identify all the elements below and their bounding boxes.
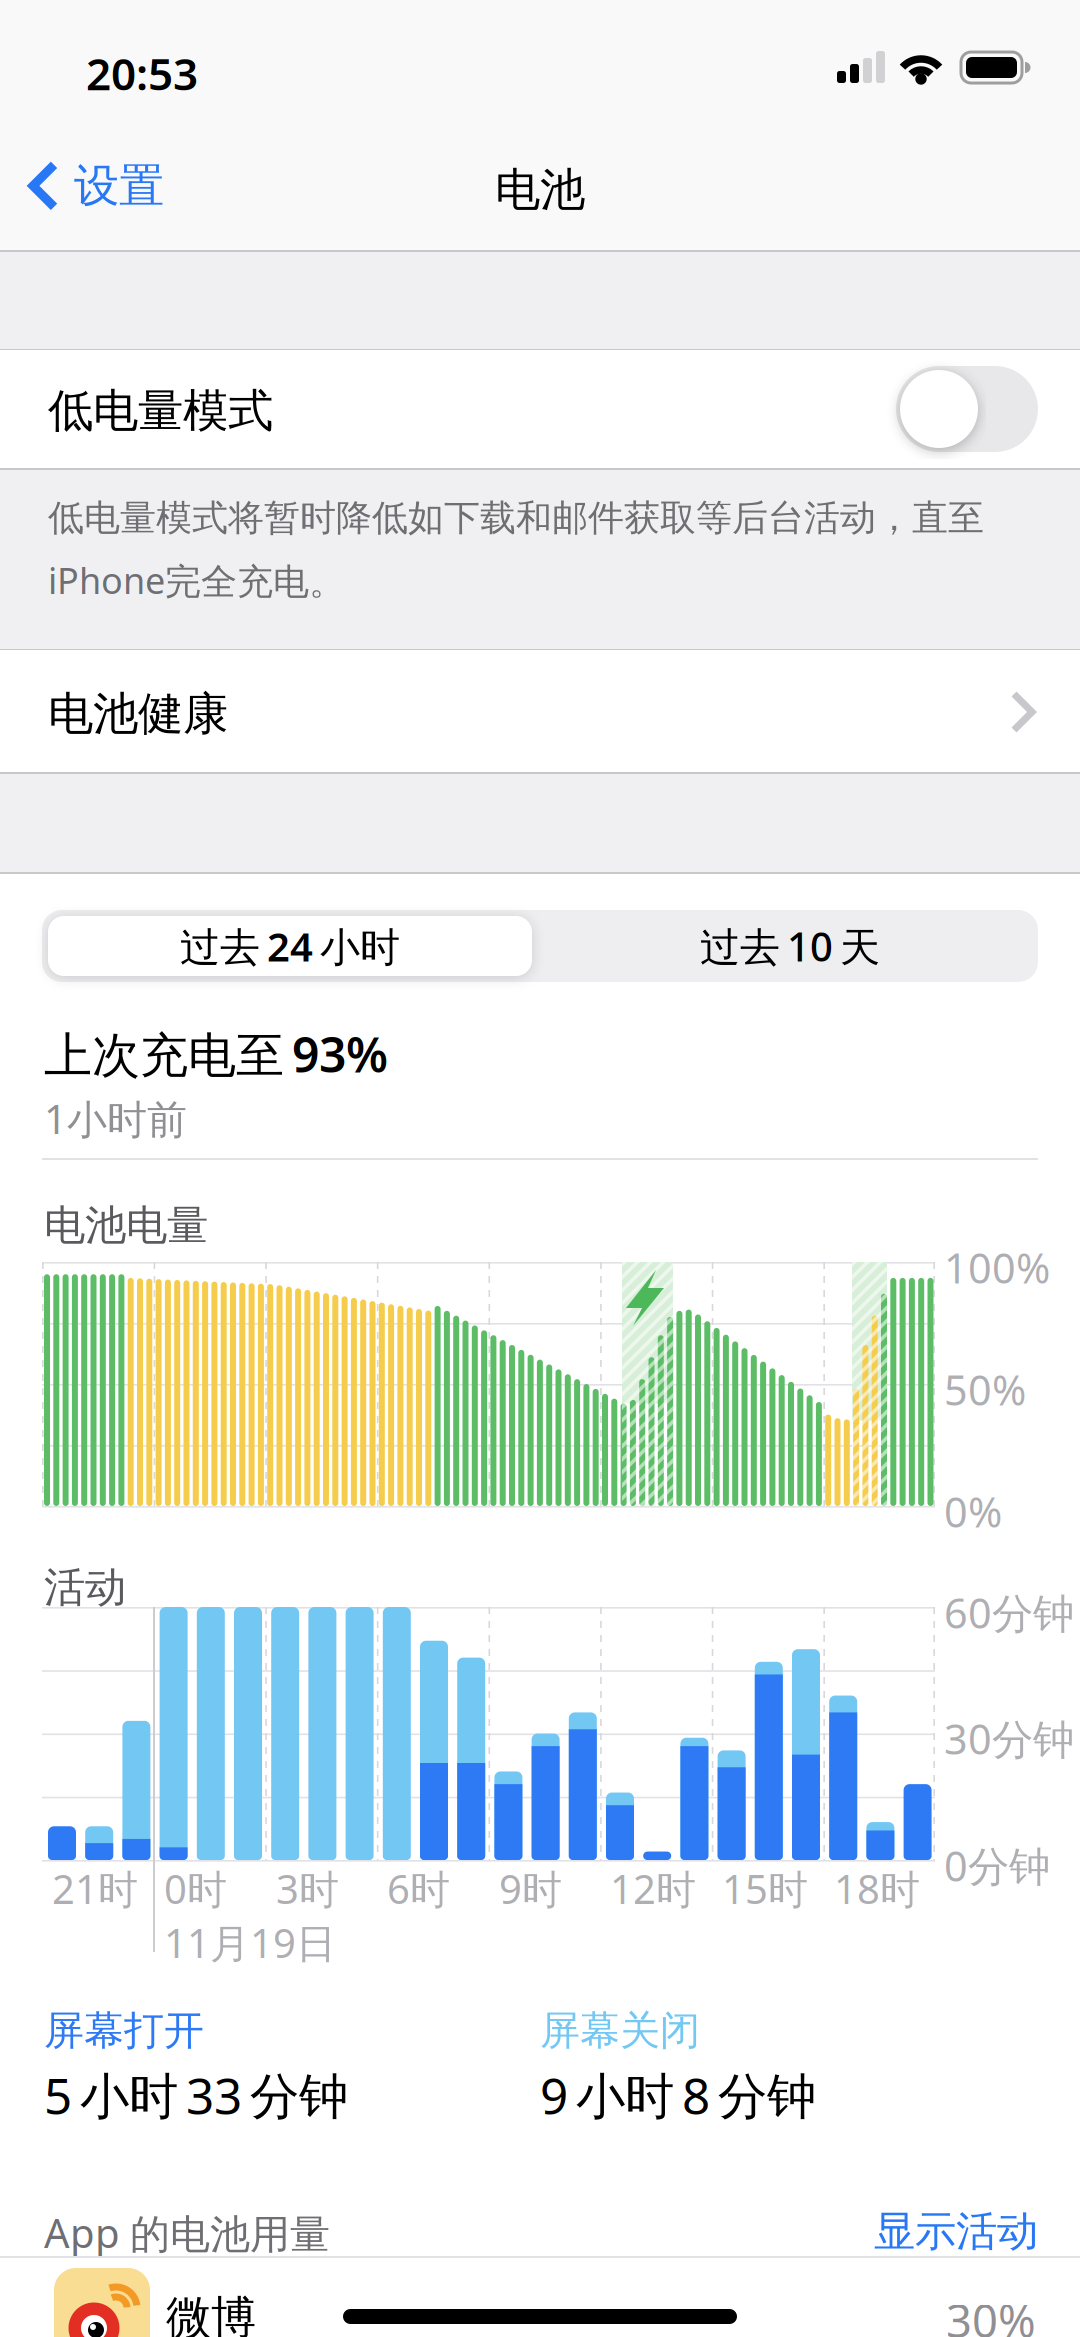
button[interactable]: 电池健康	[0, 650, 1080, 772]
staticText: 30%	[946, 2290, 1036, 2337]
button[interactable]: 设置	[0, 132, 136, 188]
button[interactable]: 低电量模式	[896, 366, 1038, 452]
staticText: 过去 24 小时	[180, 919, 400, 972]
staticText: 9时	[499, 1862, 562, 1915]
staticText: 显示活动	[874, 2206, 1038, 2257]
staticText: 0%	[944, 1484, 1002, 1539]
staticText: 微博	[166, 2290, 256, 2337]
staticText: 9 小时 8 分钟	[540, 2062, 816, 2127]
button[interactable]: 过去 24 小时	[42, 910, 538, 982]
staticText: 3时	[276, 1862, 339, 1915]
staticText: 20:53	[86, 44, 198, 102]
staticText: 50%	[944, 1362, 1026, 1417]
button[interactable]: 低电量模式	[0, 350, 1080, 468]
staticText: 21时	[52, 1862, 138, 1915]
staticText: 低电量模式将暂时降低如下载和邮件获取等后台活动，直至 iPhone完全充电。	[48, 496, 984, 604]
staticText: 0分钟	[944, 1838, 1050, 1893]
staticText: 屏幕打开	[44, 2006, 204, 2055]
button[interactable]: 微博	[0, 2268, 1080, 2337]
staticText: 60分钟	[944, 1585, 1074, 1640]
staticText: 30分钟	[944, 1711, 1074, 1766]
staticText: 电池电量	[44, 1200, 208, 1251]
staticText: 12时	[610, 1862, 696, 1915]
staticText: 18时	[834, 1862, 920, 1915]
staticText: 0时	[164, 1862, 227, 1915]
staticText: 电池	[495, 162, 585, 218]
staticText: 电池健康	[48, 686, 228, 742]
staticText: 11月19日	[164, 1916, 336, 1969]
staticText: 低电量模式	[48, 383, 273, 439]
staticText: 5 小时 33 分钟	[44, 2062, 348, 2127]
staticText: App 的电池用量	[44, 2206, 330, 2259]
staticText: 15时	[722, 1862, 808, 1915]
staticText: 屏幕关闭	[540, 2006, 700, 2055]
staticText: 100%	[944, 1240, 1050, 1295]
staticText: 过去 10 天	[700, 919, 880, 972]
button[interactable]: 过去 10 天	[542, 910, 1038, 982]
staticText: 设置	[74, 158, 164, 214]
staticText: 上次充电至 93%	[44, 1022, 388, 1086]
staticText: 活动	[44, 1562, 126, 1613]
staticText: 1小时前	[44, 1092, 187, 1145]
staticText: 6时	[387, 1862, 450, 1915]
